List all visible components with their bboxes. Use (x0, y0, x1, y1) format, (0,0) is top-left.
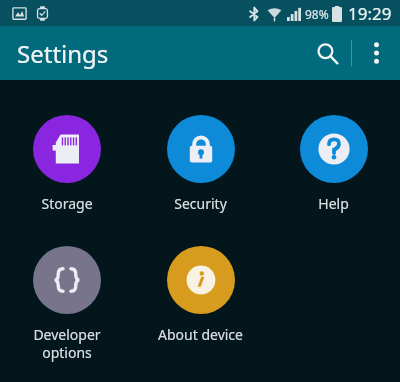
button[interactable]: Security (134, 113, 267, 213)
button[interactable]: Search (303, 29, 351, 77)
staticText: Storage (41, 194, 93, 213)
button[interactable]: More options (352, 29, 400, 77)
staticText: About device (158, 325, 243, 344)
button[interactable]: Help (267, 113, 400, 213)
staticText: 19:29 (348, 2, 392, 25)
button[interactable]: Storage (0, 113, 134, 213)
staticText: Developer options (33, 325, 101, 362)
button[interactable]: Developer options (0, 244, 134, 362)
staticText: Help (318, 194, 349, 213)
staticText: Security (174, 194, 227, 213)
button[interactable]: About device (134, 244, 267, 344)
staticText: Settings (17, 37, 109, 70)
staticText: 98% (305, 6, 329, 22)
